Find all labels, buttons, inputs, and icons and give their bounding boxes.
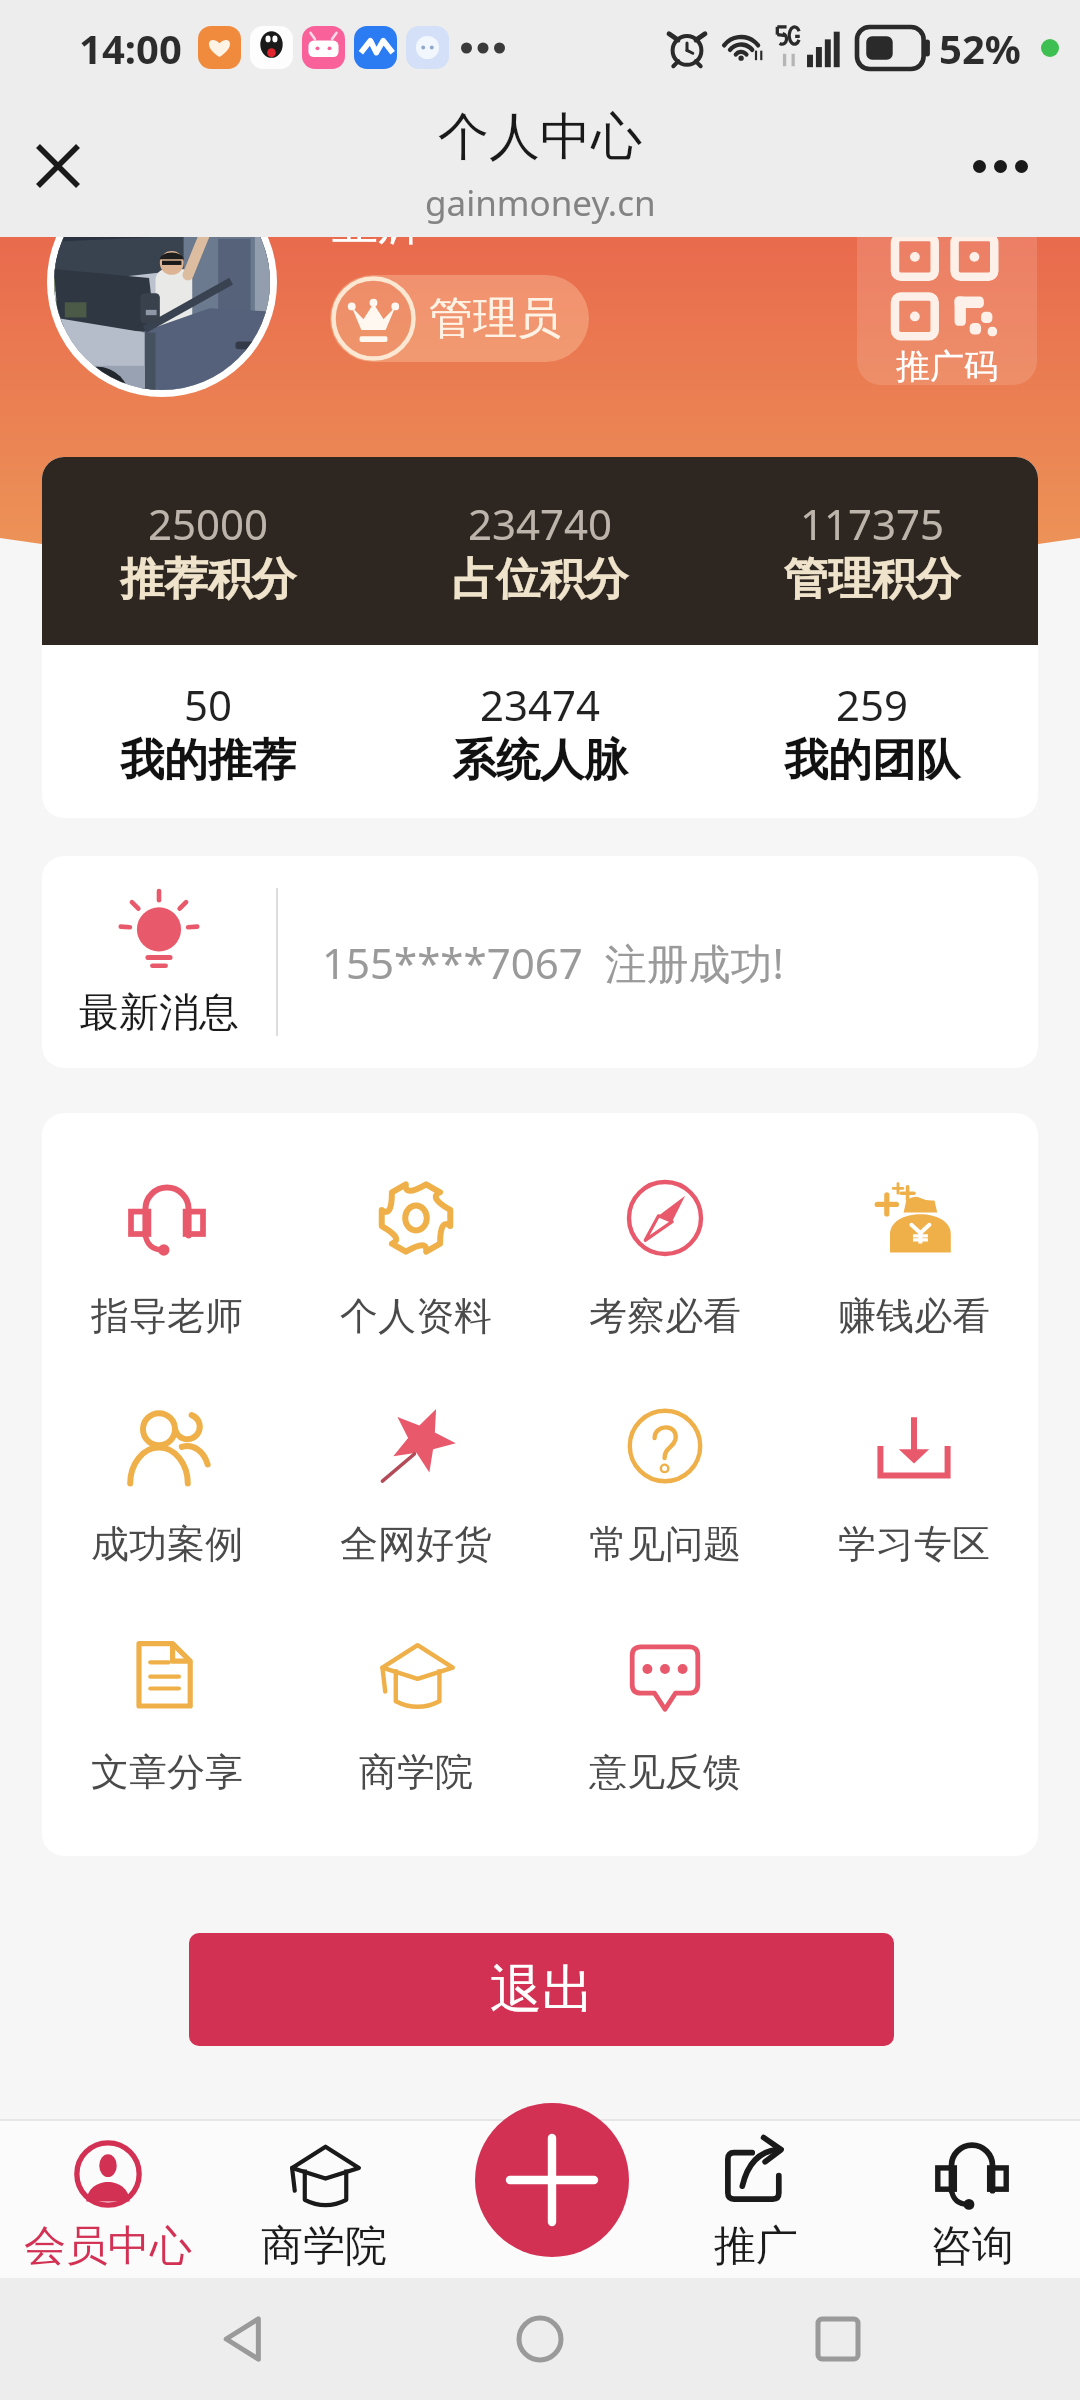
staticText: 文章分享: [91, 1748, 243, 1796]
staticText: 管理积分: [784, 552, 960, 607]
staticText: 商学院: [359, 1748, 473, 1796]
button[interactable]: 赚钱必看: [789, 1178, 1038, 1406]
button[interactable]: Avatar: [54, 237, 270, 390]
staticText: 赚钱必看: [838, 1292, 990, 1340]
staticText: 占位积分: [452, 552, 628, 607]
staticText: 学习专区: [838, 1520, 990, 1568]
staticText: 全网好货: [340, 1520, 492, 1568]
staticText: 商学院: [261, 2220, 387, 2273]
staticText: 成功案例: [91, 1520, 243, 1568]
button[interactable]: 商学院: [216, 2121, 432, 2278]
button[interactable]: 23474: [374, 676, 706, 788]
staticText: 咨询: [930, 2220, 1014, 2273]
staticText: 234740: [468, 495, 613, 552]
button[interactable]: 咨询: [864, 2121, 1080, 2278]
button[interactable]: Close: [20, 128, 96, 204]
staticText: 管理员: [429, 291, 561, 346]
button[interactable]: 管理员: [330, 275, 589, 362]
staticText: 50: [184, 676, 233, 733]
button[interactable]: 推广: [648, 2121, 864, 2278]
button[interactable]: 全网好货: [291, 1406, 540, 1634]
staticText: 52%: [939, 21, 1021, 75]
button[interactable]: 考察必看: [540, 1178, 789, 1406]
button[interactable]: 成功案例: [42, 1406, 291, 1634]
staticText: 最新消息: [79, 987, 239, 1037]
button[interactable]: 指导老师: [42, 1178, 291, 1406]
staticText: 退出: [490, 1957, 594, 2023]
staticText: 个人中心: [438, 105, 642, 169]
button[interactable]: Back: [188, 2284, 298, 2394]
button[interactable]: 意见反馈: [540, 1634, 789, 1856]
staticText: 259: [836, 676, 909, 733]
button[interactable]: 最新消息: [42, 856, 1038, 1068]
staticText: 常见问题: [589, 1520, 741, 1568]
staticText: 117375: [800, 495, 945, 552]
staticText: 指导老师: [91, 1292, 243, 1340]
staticText: 14:00: [79, 21, 182, 75]
button[interactable]: Home: [485, 2284, 595, 2394]
button[interactable]: 25000: [42, 495, 374, 607]
staticText: 推广码: [896, 345, 998, 385]
button[interactable]: 学习专区: [789, 1406, 1038, 1634]
staticText: 23474: [480, 676, 601, 733]
button[interactable]: 商学院: [291, 1634, 540, 1856]
staticText: 意见反馈: [589, 1748, 741, 1796]
staticText: 155****7067 注册成功!: [322, 934, 784, 991]
staticText: 推广: [714, 2220, 798, 2273]
staticText: 系统人脉: [452, 733, 628, 788]
button[interactable]: 117375: [706, 495, 1038, 607]
button[interactable]: 50: [42, 676, 374, 788]
button[interactable]: 234740: [374, 495, 706, 607]
button[interactable]: 推广码: [857, 237, 1037, 385]
button[interactable]: 259: [706, 676, 1038, 788]
button[interactable]: 会员中心: [0, 2121, 216, 2278]
button[interactable]: 退出: [189, 1933, 894, 2046]
button[interactable]: 常见问题: [540, 1406, 789, 1634]
staticText: 推荐积分: [120, 552, 296, 607]
staticText: 亚辉: [332, 237, 424, 253]
staticText: 会员中心: [24, 2220, 192, 2273]
staticText: 考察必看: [589, 1292, 741, 1340]
staticText: 25000: [148, 495, 269, 552]
button[interactable]: 个人资料: [291, 1178, 540, 1406]
button[interactable]: 文章分享: [42, 1634, 291, 1856]
staticText: 我的推荐: [120, 733, 296, 788]
button[interactable]: Add: [475, 2103, 629, 2257]
staticText: 个人资料: [340, 1292, 492, 1340]
staticText: gainmoney.cn: [425, 179, 656, 227]
staticText: 我的团队: [784, 733, 960, 788]
button[interactable]: More options: [962, 128, 1038, 204]
button[interactable]: Recent apps: [783, 2284, 893, 2394]
